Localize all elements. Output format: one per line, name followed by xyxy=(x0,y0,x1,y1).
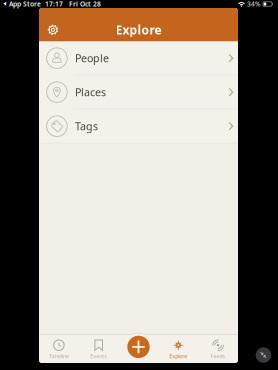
staticText: 34% xyxy=(245,0,263,8)
button[interactable]: Tags xyxy=(39,109,238,143)
staticText: Explore xyxy=(169,353,187,360)
button[interactable]: Add xyxy=(127,336,150,358)
button[interactable]: Feeds xyxy=(199,336,238,363)
button[interactable]: Explore xyxy=(159,336,198,363)
staticText: App Store xyxy=(9,0,41,8)
staticText: Explore xyxy=(115,22,161,38)
staticText: Tags xyxy=(75,119,98,133)
button[interactable]: Settings xyxy=(45,22,61,38)
button[interactable]: Events xyxy=(79,336,118,363)
button[interactable]: People xyxy=(39,41,238,75)
staticText: Places xyxy=(75,85,106,99)
staticText: 17:17 Fri Oct 28 xyxy=(41,0,101,8)
button[interactable]: Places xyxy=(39,75,238,109)
staticText: Feeds xyxy=(211,353,226,360)
button[interactable]: Zoom xyxy=(256,347,271,363)
button[interactable]: Timeline xyxy=(39,336,78,363)
staticText: Timeline xyxy=(49,353,69,360)
button[interactable]: App Store xyxy=(3,0,41,8)
staticText: People xyxy=(75,51,109,65)
staticText: Events xyxy=(90,353,107,360)
